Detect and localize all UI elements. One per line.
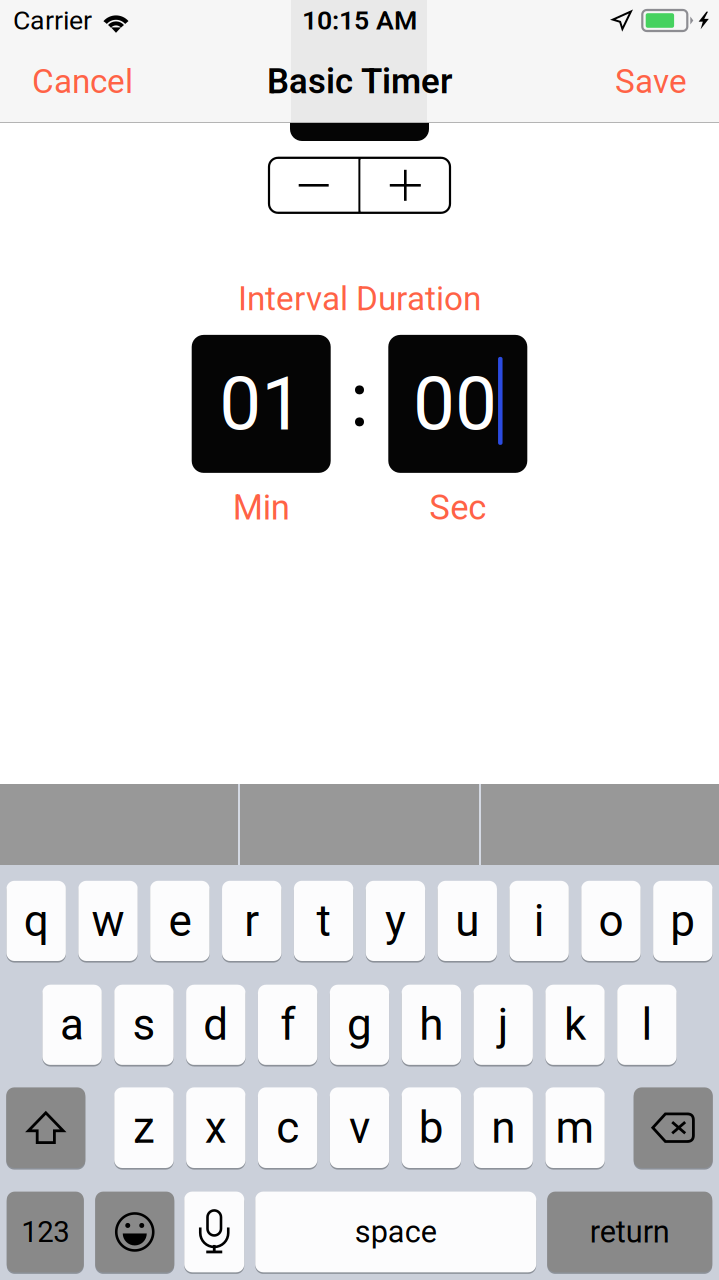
button[interactable]: n [473, 1087, 533, 1168]
button[interactable]: 00 [388, 335, 527, 473]
staticText: Interval Duration [238, 280, 481, 318]
staticText: b [419, 1103, 444, 1153]
button[interactable]: Delete [634, 1087, 713, 1168]
staticText: y [385, 896, 406, 946]
staticText: q [24, 896, 49, 946]
button[interactable]: i [509, 881, 569, 961]
staticText: d [203, 1000, 228, 1050]
staticText: s [132, 1000, 155, 1050]
staticText: Cancel [32, 62, 133, 101]
button[interactable]: s [114, 985, 174, 1065]
button[interactable]: w [78, 881, 138, 961]
button[interactable]: r [222, 881, 281, 961]
button[interactable]: v [330, 1087, 389, 1168]
staticText: i [534, 896, 545, 946]
button[interactable]: Emoji [95, 1192, 174, 1272]
staticText: o [598, 896, 623, 946]
staticText: 01 [219, 361, 303, 446]
staticText: g [347, 1000, 372, 1050]
staticText: Min [233, 488, 290, 527]
button[interactable]: Save [597, 41, 705, 122]
button[interactable]: h [402, 985, 461, 1065]
staticText: Save [615, 62, 687, 101]
staticText: h [419, 1000, 443, 1050]
button[interactable]: y [366, 881, 425, 961]
button[interactable]: l [617, 985, 677, 1065]
button[interactable]: space [255, 1192, 536, 1272]
staticText: l [641, 1000, 652, 1050]
button[interactable]: 01 [192, 335, 331, 473]
staticText: a [60, 1000, 84, 1050]
staticText: Carrier [13, 5, 92, 36]
button[interactable]: u [438, 881, 497, 961]
staticText: m [556, 1103, 595, 1153]
button[interactable]: 123 [7, 1192, 84, 1272]
button[interactable]: d [186, 985, 245, 1065]
staticText: Sec [429, 488, 486, 527]
staticText: j [498, 1000, 509, 1050]
button[interactable]: g [330, 985, 389, 1065]
staticText: x [205, 1103, 227, 1153]
staticText: w [91, 896, 124, 946]
button[interactable]: a [42, 985, 102, 1065]
button[interactable]: b [402, 1087, 461, 1168]
button[interactable]: o [581, 881, 641, 961]
staticText: c [276, 1103, 299, 1153]
button[interactable]: Shift [6, 1087, 85, 1168]
button[interactable]: Decrease [269, 160, 358, 211]
staticText: 00 [413, 361, 497, 446]
button[interactable]: q [6, 881, 66, 961]
staticText: p [670, 896, 695, 946]
button[interactable]: return [547, 1192, 712, 1272]
staticText: Basic Timer [267, 62, 452, 101]
staticText: 123 [21, 1215, 69, 1249]
button[interactable]: Dictate [184, 1192, 244, 1272]
button[interactable]: k [545, 985, 605, 1065]
staticText: v [349, 1103, 370, 1153]
staticText: n [491, 1103, 515, 1153]
button[interactable]: z [114, 1087, 174, 1168]
button[interactable]: f [258, 985, 317, 1065]
button[interactable]: j [473, 985, 533, 1065]
staticText: t [317, 896, 331, 946]
button[interactable]: Cancel [14, 41, 151, 122]
button[interactable]: c [258, 1087, 317, 1168]
staticText: e [168, 896, 191, 946]
button[interactable]: x [186, 1087, 245, 1168]
staticText: space [355, 1214, 437, 1249]
staticText: u [455, 896, 479, 946]
button[interactable]: m [545, 1087, 605, 1168]
button[interactable]: t [294, 881, 353, 961]
button[interactable]: e [150, 881, 210, 961]
staticText: f [280, 1000, 295, 1050]
staticText: r [244, 896, 259, 946]
staticText: k [564, 1000, 586, 1050]
staticText: z [133, 1103, 155, 1153]
button[interactable]: p [653, 881, 712, 961]
staticText: 10:15 AM [302, 5, 417, 36]
staticText: return [590, 1214, 670, 1249]
button[interactable]: Increase [361, 160, 450, 211]
